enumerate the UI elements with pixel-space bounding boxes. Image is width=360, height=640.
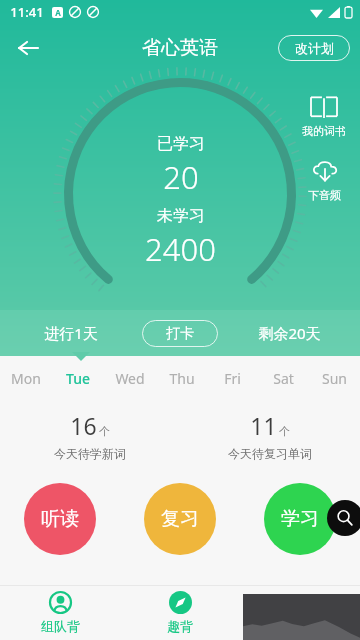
button[interactable]: Fri bbox=[207, 360, 258, 396]
staticText: 未学习 bbox=[157, 206, 205, 226]
staticText: 11 bbox=[250, 410, 277, 441]
staticText: 20 bbox=[163, 156, 199, 198]
button[interactable]: Wed bbox=[104, 360, 156, 396]
staticText: Wed bbox=[115, 369, 145, 388]
staticText: 剩余20天 bbox=[258, 323, 321, 343]
staticText: 已学习 bbox=[157, 134, 205, 154]
staticText: 打卡 bbox=[166, 325, 194, 343]
staticText: 复习 bbox=[161, 507, 199, 531]
button[interactable] bbox=[243, 594, 360, 640]
staticText: 16 bbox=[70, 410, 97, 441]
button[interactable]: Sat bbox=[258, 360, 309, 396]
staticText: Sat bbox=[273, 369, 294, 388]
staticText: 今天待学新词 bbox=[54, 446, 126, 461]
button[interactable]: 改计划 bbox=[278, 35, 350, 61]
staticText: 今天待复习单词 bbox=[228, 446, 312, 461]
button[interactable]: Back bbox=[6, 26, 50, 70]
staticText: Sun bbox=[322, 369, 347, 388]
staticText: Fri bbox=[224, 369, 241, 388]
staticText: 听读 bbox=[41, 507, 79, 531]
staticText: 学习 bbox=[281, 507, 319, 531]
staticText: 趣背 bbox=[167, 618, 193, 634]
staticText: 省心英语 bbox=[142, 36, 218, 60]
staticText: Tue bbox=[66, 369, 90, 388]
button[interactable]: 下音频 bbox=[308, 160, 341, 202]
staticText: Thu bbox=[169, 369, 195, 388]
staticText: 组队背 bbox=[41, 618, 80, 634]
button[interactable]: 学习 bbox=[264, 483, 336, 555]
button[interactable]: Tue bbox=[52, 360, 104, 396]
button[interactable]: 我的词书 bbox=[302, 96, 346, 138]
button[interactable]: 打卡 bbox=[142, 320, 218, 347]
button[interactable]: Search bbox=[327, 500, 360, 536]
staticText: 进行1天 bbox=[44, 323, 98, 343]
button[interactable]: Thu bbox=[156, 360, 207, 396]
button[interactable]: Sun bbox=[309, 360, 360, 396]
staticText: Mon bbox=[11, 369, 41, 388]
staticText: 下音频 bbox=[308, 188, 341, 202]
staticText: 2400 bbox=[145, 228, 216, 270]
staticText: A bbox=[55, 7, 61, 18]
button[interactable]: 组队背 bbox=[0, 585, 120, 640]
button[interactable]: 复习 bbox=[144, 483, 216, 555]
button[interactable]: 11 bbox=[180, 400, 360, 470]
staticText: 11:41 bbox=[10, 3, 44, 21]
staticText: 我的词书 bbox=[302, 124, 346, 138]
button[interactable]: 16 bbox=[0, 400, 180, 470]
button[interactable]: Mon bbox=[0, 360, 52, 396]
staticText: 个 bbox=[99, 424, 110, 438]
button[interactable]: 趣背 bbox=[120, 585, 240, 640]
button[interactable]: 听读 bbox=[24, 483, 96, 555]
staticText: 改计划 bbox=[295, 40, 334, 56]
staticText: 个 bbox=[279, 424, 290, 438]
